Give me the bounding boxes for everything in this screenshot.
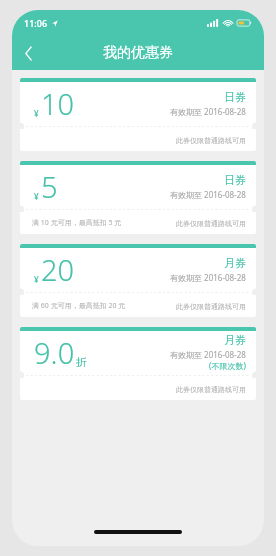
staticText: 满 10 元可用，最高抵扣 5 元 [32, 218, 122, 228]
staticText: 20 [41, 250, 75, 289]
staticText: 折 [76, 355, 87, 369]
staticText: 月券 [224, 256, 246, 270]
staticText: 有效期至 2016-08-28 [170, 272, 246, 283]
staticText: 满 60 元可用，最高抵扣 20 元 [32, 301, 126, 311]
staticText: 此券仅限普通路线可用 [176, 385, 246, 394]
staticText: ¥ [34, 274, 39, 285]
button[interactable]: Back [12, 37, 44, 69]
staticText: 日券 [224, 173, 246, 187]
staticText: 此券仅限普通路线可用 [176, 219, 246, 228]
staticText: ¥ [34, 191, 39, 202]
staticText: (不限次数) [209, 360, 246, 371]
staticText: 此券仅限普通路线可用 [176, 302, 246, 311]
staticText: 我的优惠券 [103, 44, 173, 62]
button[interactable]: 9.0 [20, 327, 256, 400]
button[interactable]: ¥ [20, 244, 256, 317]
staticText: 10 [41, 84, 75, 123]
staticText: 有效期至 2016-08-28 [170, 189, 246, 200]
staticText: 有效期至 2016-08-28 [170, 349, 246, 360]
staticText: 5 [41, 167, 58, 206]
staticText: 11:06 [24, 17, 48, 29]
button[interactable]: ¥ [20, 161, 256, 234]
staticText: ¥ [34, 108, 39, 119]
staticText: 月券 [224, 333, 246, 347]
staticText: 有效期至 2016-08-28 [170, 106, 246, 117]
staticText: 日券 [224, 90, 246, 104]
button[interactable]: ¥ [20, 78, 256, 151]
staticText: 此券仅限普通路线可用 [176, 136, 246, 145]
staticText: 9.0 [34, 333, 75, 372]
